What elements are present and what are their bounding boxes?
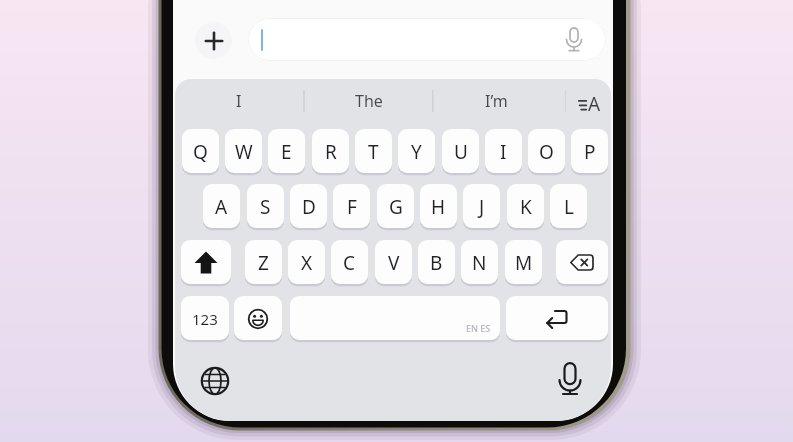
button[interactable] [554, 361, 586, 396]
button[interactable] [506, 296, 608, 341]
button[interactable]: L [550, 184, 587, 229]
button[interactable]: X [288, 240, 325, 285]
button[interactable]: H [420, 184, 457, 229]
staticText: T [368, 139, 379, 165]
button[interactable]: D [290, 184, 327, 229]
button[interactable]: T [355, 129, 392, 174]
button[interactable]: V [375, 240, 412, 285]
staticText: A [588, 91, 601, 117]
button[interactable]: M [505, 240, 542, 285]
button[interactable]: C [331, 240, 368, 285]
button[interactable]: S [247, 184, 284, 229]
staticText: X [301, 250, 313, 276]
staticText: F [347, 194, 357, 220]
button[interactable]: W [225, 129, 262, 174]
button[interactable]: Y [398, 129, 435, 174]
button[interactable]: N [461, 240, 498, 285]
staticText: Q [193, 139, 208, 165]
staticText: The [355, 90, 383, 112]
staticText: H [431, 194, 446, 220]
button[interactable] [248, 18, 606, 61]
staticText: B [430, 250, 443, 276]
staticText: V [388, 250, 400, 276]
button[interactable]: Q [182, 129, 219, 174]
staticText: W [235, 139, 253, 165]
staticText: N [472, 250, 487, 276]
button[interactable]: O [528, 129, 565, 174]
staticText: I [236, 90, 242, 112]
staticText: U [454, 139, 468, 165]
staticText: O [539, 139, 554, 165]
button[interactable] [195, 22, 232, 59]
button[interactable]: I [485, 129, 522, 174]
staticText: I [500, 139, 507, 165]
button[interactable]: EN ES [290, 296, 500, 341]
staticText: J [479, 194, 485, 220]
button[interactable]: B [418, 240, 455, 285]
button[interactable]: The [319, 88, 419, 114]
staticText: G [389, 194, 403, 220]
staticText: E [281, 139, 292, 165]
staticText: I’m [485, 90, 508, 112]
button[interactable] [181, 240, 231, 285]
staticText: L [564, 194, 574, 220]
button[interactable]: K [507, 184, 544, 229]
button[interactable] [199, 365, 230, 396]
button[interactable]: G [377, 184, 414, 229]
staticText: S [260, 194, 271, 220]
staticText: A [215, 194, 228, 220]
button[interactable] [234, 296, 282, 341]
button[interactable]: I [189, 88, 289, 114]
button[interactable]: P [571, 129, 608, 174]
staticText: D [302, 194, 316, 220]
button[interactable]: A [203, 184, 240, 229]
button[interactable]: I’m [446, 88, 546, 114]
button[interactable]: U [442, 129, 479, 174]
button[interactable]: R [312, 129, 349, 174]
staticText: 123 [192, 309, 218, 329]
button[interactable] [556, 240, 608, 285]
staticText: M [515, 250, 533, 276]
button[interactable]: A [579, 90, 609, 118]
staticText: C [343, 250, 356, 276]
staticText: Y [411, 139, 422, 165]
staticText: P [584, 139, 596, 165]
button[interactable]: E [268, 129, 305, 174]
staticText: Z [258, 250, 269, 276]
staticText: EN ES [466, 322, 491, 334]
staticText: K [520, 194, 532, 220]
button[interactable]: J [463, 184, 500, 229]
button[interactable]: 123 [181, 296, 229, 341]
staticText: R [325, 139, 337, 165]
button[interactable]: F [333, 184, 370, 229]
button[interactable]: Z [245, 240, 282, 285]
